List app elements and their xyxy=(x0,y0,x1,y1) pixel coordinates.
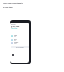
button[interactable]: Amazon xyxy=(11,41,29,44)
button[interactable]: Tesla xyxy=(11,38,29,41)
staticText: TSLA xyxy=(14,40,17,41)
staticText: +2.4% today xyxy=(11,28,18,29)
staticText: AMZN xyxy=(14,43,17,44)
staticText: AAPL xyxy=(14,36,17,37)
staticText: See all holdings xyxy=(16,47,24,48)
staticText: Apple xyxy=(14,35,17,36)
staticText: Amazon xyxy=(14,42,19,43)
staticText: Track your investments in real time. xyxy=(3,2,23,9)
button[interactable]: Apple xyxy=(11,34,29,37)
staticText: Tesla xyxy=(14,39,17,40)
staticText: $48,230 xyxy=(11,25,20,28)
button[interactable]: See all holdings xyxy=(11,46,29,48)
staticText: Balance xyxy=(11,24,16,26)
